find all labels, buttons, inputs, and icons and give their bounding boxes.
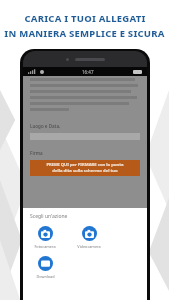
- staticText: CARICA I TUOI ALLEGATI: [24, 12, 146, 25]
- staticText: Scegli un'azione: [30, 213, 68, 220]
- staticText: Luogo e Data,: [30, 123, 61, 129]
- staticText: PREMI QUI per FIRMARE con la punta: [46, 162, 124, 168]
- button[interactable]: Download: [30, 256, 60, 279]
- staticText: Download: [36, 274, 55, 279]
- staticText: della dita sulla schermo del tuo: [52, 168, 118, 174]
- staticText: Fotocamera: [34, 244, 56, 249]
- staticText: 16:47: [82, 69, 94, 75]
- staticText: Firma: [30, 150, 43, 156]
- button[interactable]: PREMI QUI per FIRMARE con la punta: [30, 160, 140, 176]
- button[interactable]: Fotocamera: [30, 226, 60, 249]
- staticText: Videocamera: [77, 244, 101, 249]
- button[interactable]: Videocamera: [74, 226, 104, 249]
- staticText: IN MANIERA SEMPLICE E SICURA: [4, 27, 165, 40]
